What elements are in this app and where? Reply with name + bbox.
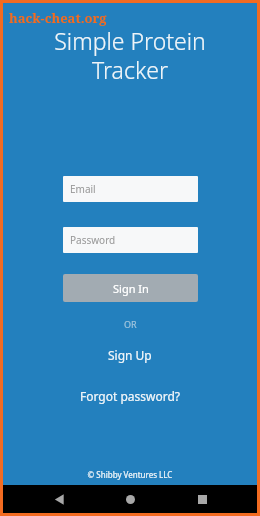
button[interactable]: Back bbox=[43, 485, 75, 513]
button[interactable]: Password bbox=[63, 227, 198, 253]
staticText: Password bbox=[70, 233, 116, 247]
staticText: Forgot password? bbox=[80, 388, 181, 404]
staticText: OR bbox=[124, 318, 137, 330]
staticText: hack-cheat.org bbox=[9, 9, 107, 27]
button[interactable]: Recent apps bbox=[186, 485, 218, 513]
staticText: © Shibby Ventures LLC bbox=[3, 469, 257, 480]
button[interactable]: Home bbox=[114, 485, 146, 513]
staticText: Simple Protein Tracker bbox=[3, 25, 257, 86]
staticText: Email bbox=[70, 182, 96, 196]
button[interactable]: Forgot password? bbox=[68, 385, 193, 407]
button[interactable]: Sign Up bbox=[90, 344, 170, 366]
button[interactable]: Sign In bbox=[63, 274, 198, 302]
button[interactable]: Email bbox=[63, 176, 198, 202]
staticText: Sign In bbox=[113, 281, 149, 296]
staticText: Sign Up bbox=[108, 347, 152, 363]
